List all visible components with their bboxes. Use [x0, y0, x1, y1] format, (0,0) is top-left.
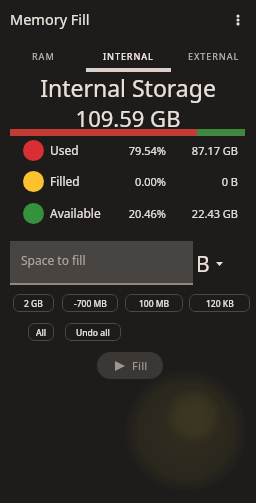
button[interactable]: RAM: [0, 43, 86, 69]
staticText: 109.59 GB: [0, 103, 256, 133]
staticText: Memory Fill: [10, 9, 90, 29]
button[interactable]: 2 GB: [13, 294, 54, 312]
button[interactable]: All: [28, 323, 54, 341]
button[interactable]: INTERNAL: [86, 43, 171, 69]
button[interactable]: Used: [0, 139, 256, 161]
button[interactable]: 100 MB: [125, 294, 183, 312]
button[interactable]: 120 KB: [189, 294, 250, 312]
staticText: Internal Storage: [0, 72, 256, 103]
staticText: Filled: [50, 173, 80, 189]
staticText: 79.54%: [106, 143, 166, 158]
staticText: Fill: [132, 358, 148, 373]
staticText: 0.00%: [106, 174, 166, 189]
staticText: 2 GB: [24, 298, 43, 310]
staticText: Undo all: [76, 327, 110, 339]
staticText: B: [196, 250, 210, 279]
button[interactable]: Unit selector: [196, 249, 223, 279]
staticText: All: [36, 327, 47, 339]
button[interactable]: Fill: [97, 352, 163, 379]
button[interactable]: Filled: [0, 170, 256, 192]
staticText: Space to fill: [21, 252, 86, 268]
button[interactable]: More options: [220, 0, 256, 40]
staticText: 87.17 GB: [178, 143, 238, 158]
staticText: EXTERNAL: [188, 50, 240, 62]
button[interactable]: Available: [0, 202, 256, 224]
staticText: 22.43 GB: [178, 206, 238, 221]
staticText: RAM: [32, 50, 55, 62]
button[interactable]: -700 MB: [62, 294, 118, 312]
staticText: 120 KB: [206, 298, 234, 310]
staticText: Available: [50, 205, 101, 221]
staticText: INTERNAL: [103, 50, 154, 62]
button[interactable]: Undo all: [65, 323, 121, 341]
button[interactable]: EXTERNAL: [171, 43, 256, 69]
staticText: Used: [50, 142, 79, 158]
staticText: 20.46%: [106, 206, 166, 221]
staticText: -700 MB: [74, 298, 107, 310]
staticText: 0 B: [178, 174, 238, 189]
button[interactable]: Space to fill: [10, 241, 193, 285]
staticText: 100 MB: [139, 298, 170, 310]
